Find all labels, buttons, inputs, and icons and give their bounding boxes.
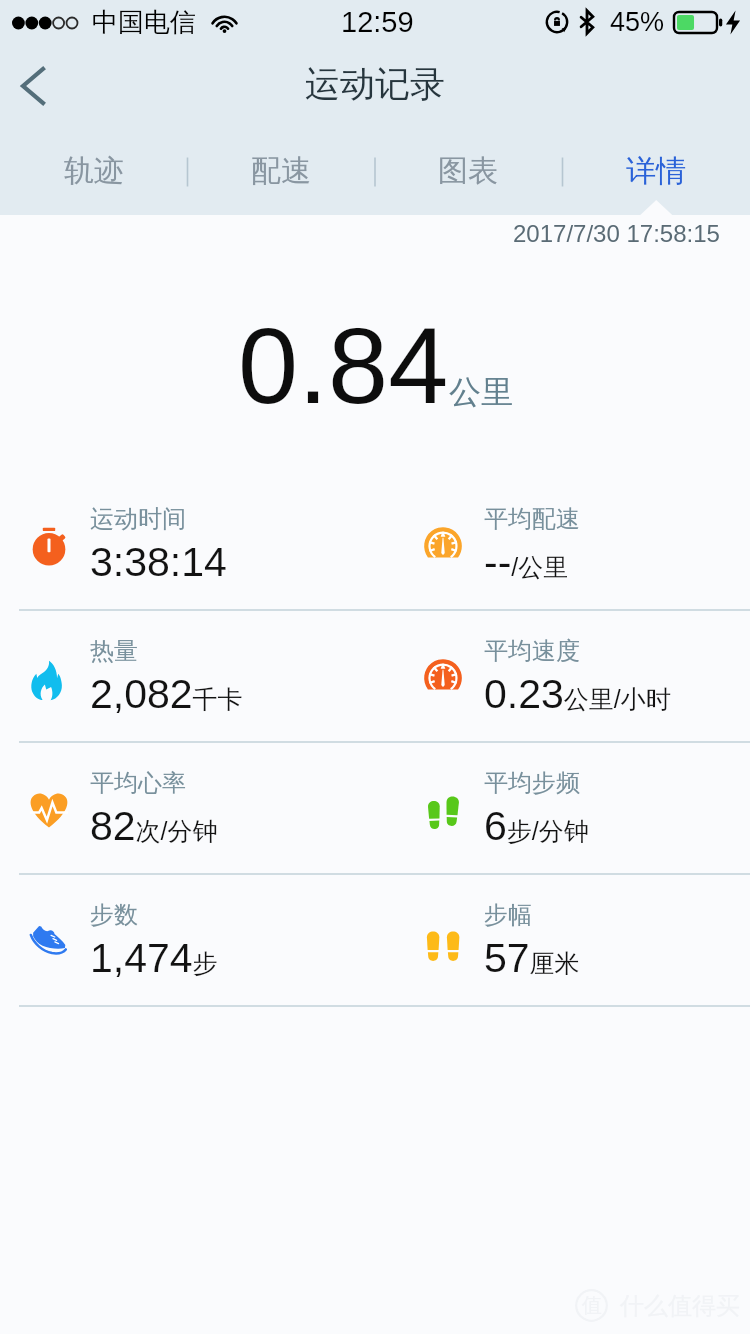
staticText: 45% <box>610 7 665 37</box>
staticText: 0.84 <box>238 305 449 426</box>
button[interactable]: 平均配速 <box>394 479 750 609</box>
staticText: 2017/7/30 17:58:15 <box>513 220 720 247</box>
staticText: 平均配速 <box>484 504 580 534</box>
button[interactable]: 平均速度 <box>394 611 750 741</box>
button[interactable]: 平均步频 <box>394 743 750 873</box>
staticText: 图表 <box>438 152 498 190</box>
staticText: 0.23公里/小时 <box>484 671 671 717</box>
staticText: 57厘米 <box>484 935 580 981</box>
button[interactable]: Back <box>4 57 62 115</box>
staticText: 3:38:14 <box>90 539 227 585</box>
staticText: 公里 <box>449 372 513 412</box>
button[interactable]: 详情 <box>562 128 750 215</box>
staticText: 运动时间 <box>90 504 186 534</box>
staticText: 平均心率 <box>90 768 186 798</box>
staticText: --/公里 <box>484 539 569 585</box>
staticText: 82次/分钟 <box>90 803 218 849</box>
staticText: 轨迹 <box>64 152 124 190</box>
staticText: 6步/分钟 <box>484 803 589 849</box>
staticText: 平均步频 <box>484 768 580 798</box>
button[interactable]: 步幅 <box>394 875 750 1005</box>
staticText: 配速 <box>251 152 311 190</box>
staticText: 运动记录 <box>305 62 445 106</box>
button[interactable]: 运动时间 <box>0 479 394 609</box>
staticText: 步幅 <box>484 900 532 930</box>
staticText: 12:59 <box>341 6 414 38</box>
staticText: 中国电信 <box>92 6 196 39</box>
staticText: 步数 <box>90 900 138 930</box>
button[interactable]: 平均心率 <box>0 743 394 873</box>
staticText: 1,474步 <box>90 935 218 981</box>
staticText: 什么值得买 <box>620 1291 740 1321</box>
staticText: 详情 <box>626 152 686 190</box>
button[interactable]: 配速 <box>187 128 374 215</box>
staticText: 热量 <box>90 636 138 666</box>
staticText: 2,082千卡 <box>90 671 243 717</box>
button[interactable]: 图表 <box>374 128 562 215</box>
staticText: 值 <box>582 1293 602 1318</box>
staticText: 平均速度 <box>484 636 580 666</box>
button[interactable]: 步数 <box>0 875 394 1005</box>
button[interactable]: 轨迹 <box>0 128 187 215</box>
button[interactable]: 热量 <box>0 611 394 741</box>
